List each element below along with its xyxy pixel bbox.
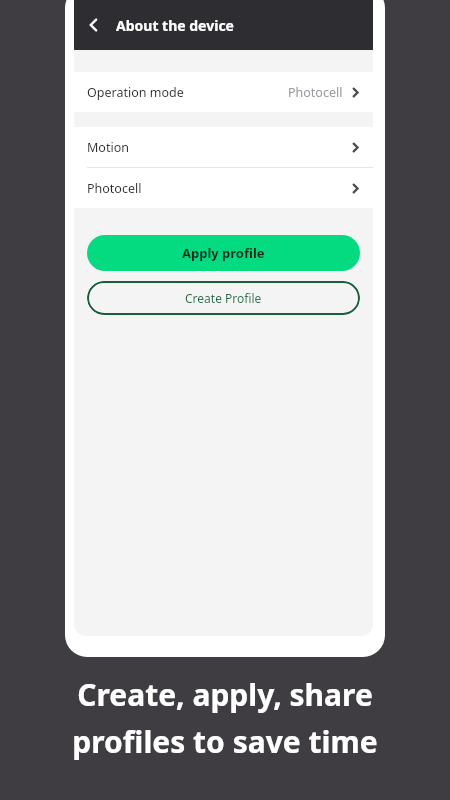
staticText: Apply profile <box>182 244 265 262</box>
staticText: profiles to save time <box>72 721 378 762</box>
button[interactable]: Create Profile <box>87 281 360 315</box>
staticText: Motion <box>87 139 129 156</box>
button[interactable]: Apply profile <box>87 235 360 271</box>
staticText: About the device <box>116 16 234 35</box>
staticText: Operation mode <box>87 84 184 101</box>
button[interactable]: Back <box>74 5 114 45</box>
staticText: Photocell <box>288 84 343 101</box>
button[interactable]: Motion <box>74 127 373 167</box>
staticText: Create Profile <box>185 290 262 306</box>
button[interactable]: Operation mode <box>74 72 373 112</box>
staticText: Photocell <box>87 180 142 197</box>
button[interactable]: Photocell <box>74 168 373 208</box>
staticText: Create, apply, share <box>77 674 373 715</box>
